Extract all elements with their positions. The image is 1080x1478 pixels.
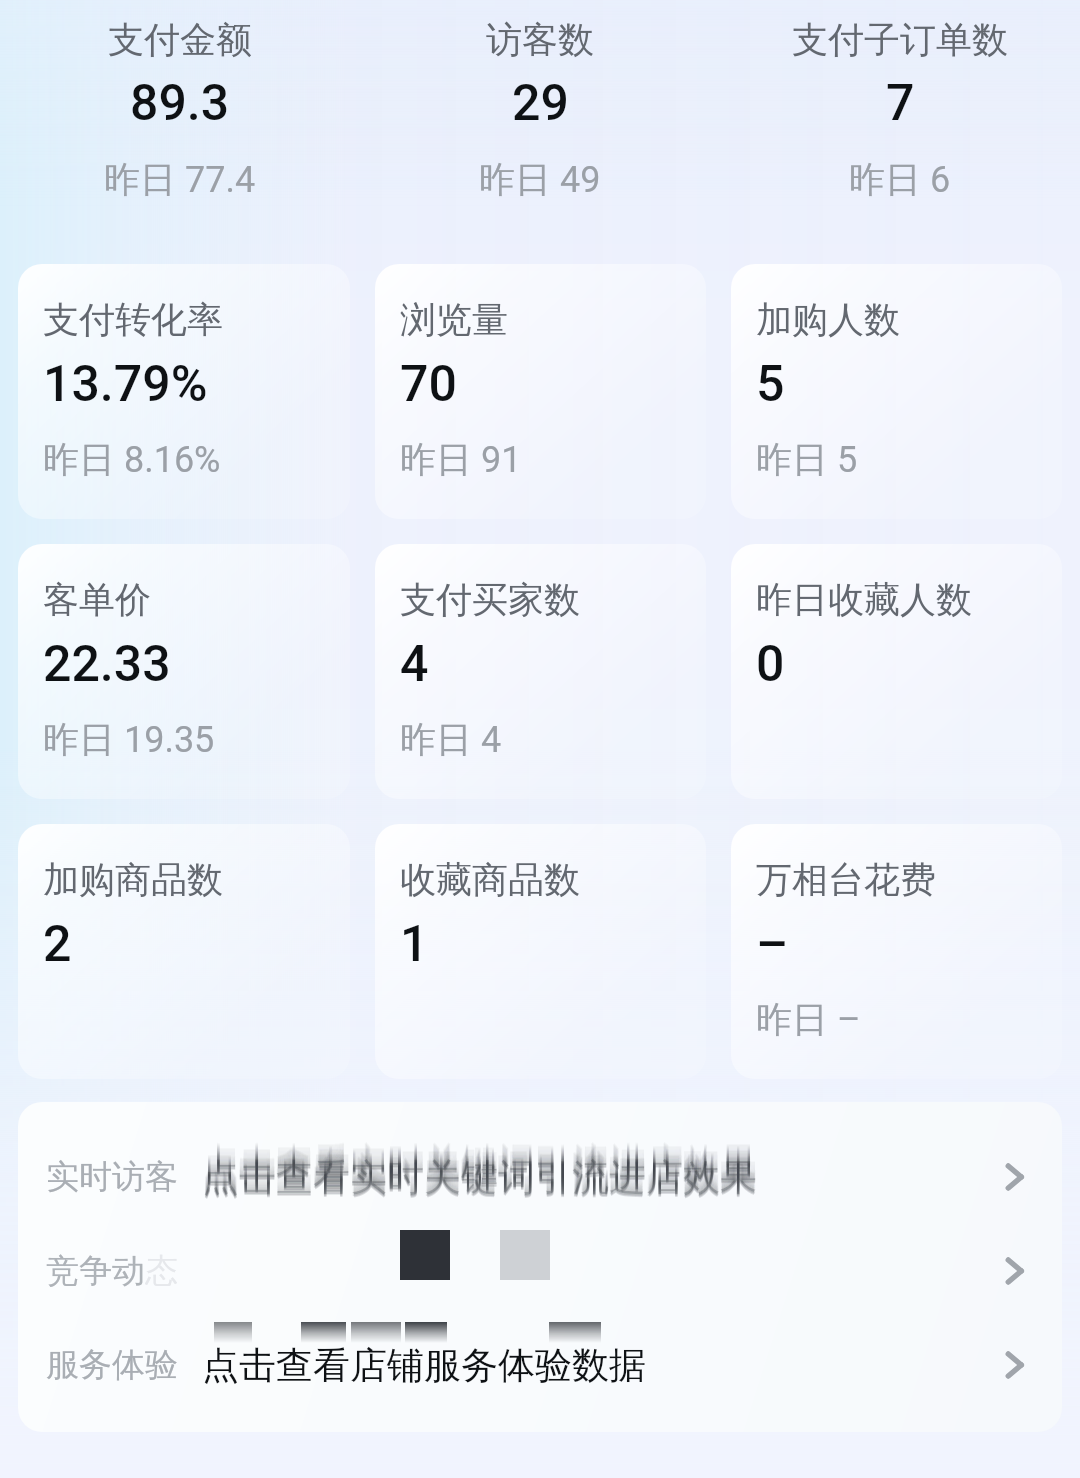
staticText: 点击查看实时关键词引流进店效果 [202, 1146, 757, 1193]
staticText: 点击查看实时关键词引流进店效果 [202, 1145, 757, 1192]
staticText: 万相台花费 [756, 857, 936, 902]
staticText: 态 [145, 1250, 178, 1292]
staticText: 70 [400, 355, 457, 414]
button[interactable]: 浏览量 [375, 264, 706, 519]
staticText: 浏览量 [400, 297, 508, 342]
staticText: 点击查看实时关键词引流进店效果 [202, 1143, 757, 1190]
staticText: 点击查看实时关键词引流进店效果 [202, 1147, 757, 1194]
staticText: 昨日 19.35 [43, 717, 215, 762]
button[interactable]: 访客数 [360, 17, 720, 202]
staticText: 点击查看实时关键词引流进店效果 [202, 1140, 757, 1187]
staticText: 点击查看实时关键词引流进店效果 [202, 1137, 757, 1184]
other: 服务体验 [998, 1345, 1038, 1385]
staticText: 访客数 [486, 17, 594, 62]
button[interactable]: 支付转化率 [18, 264, 350, 519]
staticText: 29 [512, 74, 569, 133]
staticText: 点击查看实时关键词引流进店效果 [202, 1138, 757, 1185]
staticText: 支付转化率 [43, 297, 223, 342]
staticText: 点击查看实时关键词引流进店效果 [202, 1141, 757, 1188]
staticText: 支付子订单数 [792, 17, 1008, 62]
staticText: 2 [43, 915, 72, 974]
staticText: 点击查看实时关键词引流进店效果 [202, 1142, 757, 1189]
staticText: 昨日 – [756, 997, 861, 1042]
staticText: 实时访客 [46, 1156, 178, 1198]
staticText: 昨日 91 [400, 437, 522, 482]
staticText: 点击查看实时关键词引流进店效果 [202, 1153, 757, 1200]
button[interactable]: 实时访客 [46, 1130, 1038, 1224]
staticText: 4 [400, 635, 429, 694]
staticText: 点击查看实时关键词引流进店效果 [202, 1154, 757, 1201]
staticText: 加购商品数 [43, 857, 223, 902]
button[interactable]: 客单价 [18, 544, 350, 799]
staticText: 加购人数 [756, 297, 900, 342]
button[interactable]: 昨日收藏人数 [731, 544, 1062, 799]
staticText: 点击查看实时关键词引流进店效果 [202, 1152, 757, 1199]
staticText: 点击查看实时关键词引流进店效果 [202, 1137, 757, 1184]
other: 竞争动态 [998, 1251, 1038, 1291]
staticText: – [756, 915, 789, 974]
staticText: 点击查看实时关键词引流进店效果 [202, 1138, 757, 1185]
staticText: 支付金额 [108, 17, 252, 62]
staticText: 89.3 [130, 74, 230, 133]
staticText: 昨日 8.16% [43, 437, 221, 482]
staticText: 昨日 4 [400, 717, 502, 762]
button[interactable]: 支付买家数 [375, 544, 706, 799]
button[interactable]: 服务体验 [46, 1318, 1038, 1412]
staticText: 点击查看实时关键词引流进店效果 [202, 1150, 757, 1197]
staticText: 点击查看实时关键词引流进店效果 [202, 1146, 757, 1193]
staticText: 点击查看实时关键词引流进店效果 [202, 1148, 757, 1195]
staticText: 5 [756, 355, 785, 414]
staticText: 点击查看实时关键词引流进店效果 [202, 1151, 757, 1198]
staticText: 7 [886, 74, 915, 133]
staticText: 22.33 [43, 635, 171, 694]
staticText: 点击查看实时关键词引流进店效果 [202, 1149, 757, 1196]
button[interactable]: 万相台花费 [731, 824, 1062, 1079]
staticText: 1 [400, 915, 429, 974]
staticText: 支付买家数 [400, 577, 580, 622]
staticText: 0 [756, 635, 785, 694]
staticText: 点击查看实时关键词引流进店效果 [202, 1139, 757, 1186]
button[interactable]: 支付金额 [0, 17, 360, 202]
staticText: 点击查看实时关键词引流进店效果 [202, 1139, 757, 1186]
staticText: 昨日 77.4 [104, 157, 256, 202]
staticText: 点击查看实时关键词引流进店效果 [202, 1141, 757, 1188]
button[interactable]: 加购人数 [731, 264, 1062, 519]
staticText: 竞争动 [46, 1250, 145, 1292]
staticText: 昨日 49 [479, 157, 601, 202]
button[interactable]: 收藏商品数 [375, 824, 706, 1079]
staticText: 昨日收藏人数 [756, 577, 972, 622]
staticText: 客单价 [43, 577, 151, 622]
staticText: 点击查看实时关键词引流进店效果 [202, 1144, 757, 1191]
staticText: 点击查看实时关键词引流进店效果 [202, 1154, 757, 1201]
staticText: 点击查看实时关键词引流进店效果 [202, 1151, 757, 1198]
staticText: 点击查看实时关键词引流进店效果 [202, 1156, 757, 1203]
staticText: 点击查看实时关键词引流进店效果 [202, 1153, 757, 1200]
staticText: 点击查看实时关键词引流进店效果 [202, 1148, 757, 1195]
staticText: 点击查看实时关键词引流进店效果 [202, 1155, 757, 1202]
staticText: 点击查看实时关键词引流进店效果 [202, 1147, 757, 1194]
staticText: 点击查看实时关键词引流进店效果 [202, 1140, 757, 1187]
staticText: 点击查看实时关键词引流进店效果 [202, 1157, 757, 1204]
staticText: 点击查看实时关键词引流进店效果 [202, 1154, 757, 1201]
staticText: 点击查看实时关键词引流进店效果 [202, 1149, 757, 1196]
staticText: 点击查看实时关键词引流进店效果 [202, 1145, 757, 1192]
staticText: 点击查看实时关键词引流进店效果 [202, 1150, 757, 1197]
staticText: 点击查看实时关键词引流进店效果 [202, 1144, 757, 1191]
staticText: 点击查看实时关键词引流进店效果 [202, 1155, 757, 1202]
staticText: 昨日 6 [849, 157, 951, 202]
staticText: 点击查看实时关键词引流进店效果 [202, 1156, 757, 1203]
staticText: 服务体验 [46, 1344, 178, 1386]
staticText: 昨日 5 [756, 437, 858, 482]
other: 实时访客 [998, 1157, 1038, 1197]
staticText: 点击查看实时关键词引流进店效果 [202, 1152, 757, 1199]
staticText: 收藏商品数 [400, 857, 580, 902]
button[interactable]: 加购商品数 [18, 824, 350, 1079]
staticText: 13.79% [43, 355, 208, 414]
button[interactable]: 支付子订单数 [720, 17, 1080, 202]
button[interactable]: 竞争动 [46, 1224, 1038, 1318]
staticText: 点击查看实时关键词引流进店效果 [202, 1142, 757, 1189]
staticText: 点击查看实时关键词引流进店效果 [202, 1143, 757, 1190]
staticText: 点击查看实时关键词引流进店效果 [202, 1157, 757, 1204]
staticText: 点击查看店铺服务体验数据 [202, 1342, 646, 1389]
